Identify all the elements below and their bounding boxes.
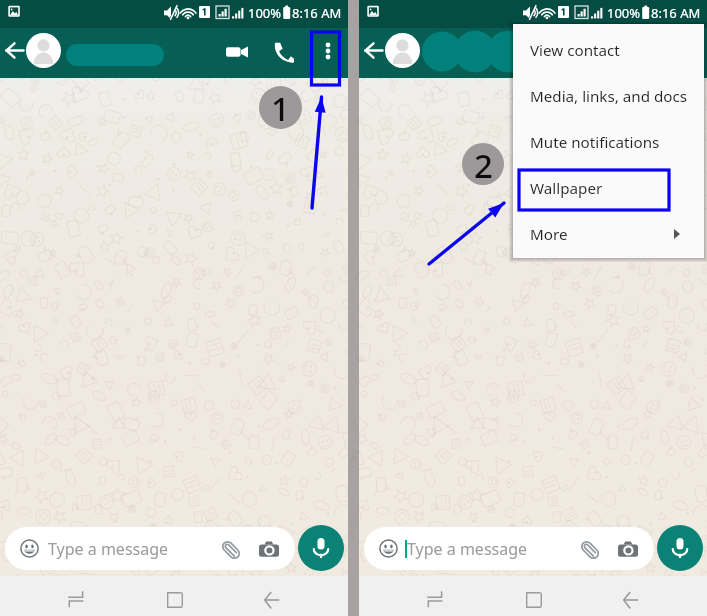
staticText: Type a message — [48, 538, 169, 560]
staticText: More — [530, 224, 568, 245]
button[interactable]: Media, links, and docs — [513, 73, 704, 119]
button[interactable]: More — [513, 211, 704, 257]
button[interactable]: Video call — [214, 27, 260, 77]
button[interactable]: Call — [260, 27, 307, 77]
button[interactable]: More options — [307, 26, 348, 76]
button[interactable]: Home — [514, 580, 554, 616]
button[interactable]: Wallpaper — [513, 165, 704, 211]
button[interactable]: Video call — [573, 27, 619, 77]
button[interactable]: More options — [666, 26, 707, 76]
button[interactable]: View contact — [513, 27, 704, 73]
button[interactable]: Attach — [576, 536, 604, 564]
staticText: 2 — [474, 143, 493, 185]
button[interactable]: Record voice message — [298, 525, 344, 571]
staticText: 1 — [271, 86, 290, 129]
button[interactable]: Back — [254, 580, 294, 616]
staticText: View contact — [530, 40, 620, 61]
staticText: Mute notifications — [530, 132, 660, 153]
staticText: 8:16 AM — [292, 4, 342, 22]
staticText: Media, links, and docs — [530, 86, 688, 107]
staticText: 8:16 AM — [651, 4, 701, 22]
button[interactable]: Type a message — [5, 527, 295, 570]
button[interactable]: Mute notifications — [513, 119, 704, 165]
staticText: 100% — [248, 4, 282, 22]
staticText: Wallpaper — [530, 178, 603, 199]
button[interactable]: Recent apps — [417, 579, 457, 616]
button[interactable]: Back — [0, 25, 26, 75]
button[interactable]: Home — [155, 580, 195, 616]
button[interactable]: Camera — [255, 536, 283, 564]
button[interactable]: Recent apps — [58, 579, 98, 616]
staticText: Type a message — [407, 538, 528, 560]
button[interactable]: Back — [613, 580, 653, 616]
button[interactable]: Record voice message — [657, 525, 703, 571]
button[interactable]: Back — [359, 25, 385, 75]
staticText: 100% — [607, 4, 641, 22]
button[interactable]: Attach — [217, 536, 245, 564]
button[interactable] — [385, 33, 420, 68]
button[interactable]: Type a message — [364, 527, 654, 570]
button[interactable]: Camera — [614, 536, 642, 564]
button[interactable] — [26, 33, 61, 68]
